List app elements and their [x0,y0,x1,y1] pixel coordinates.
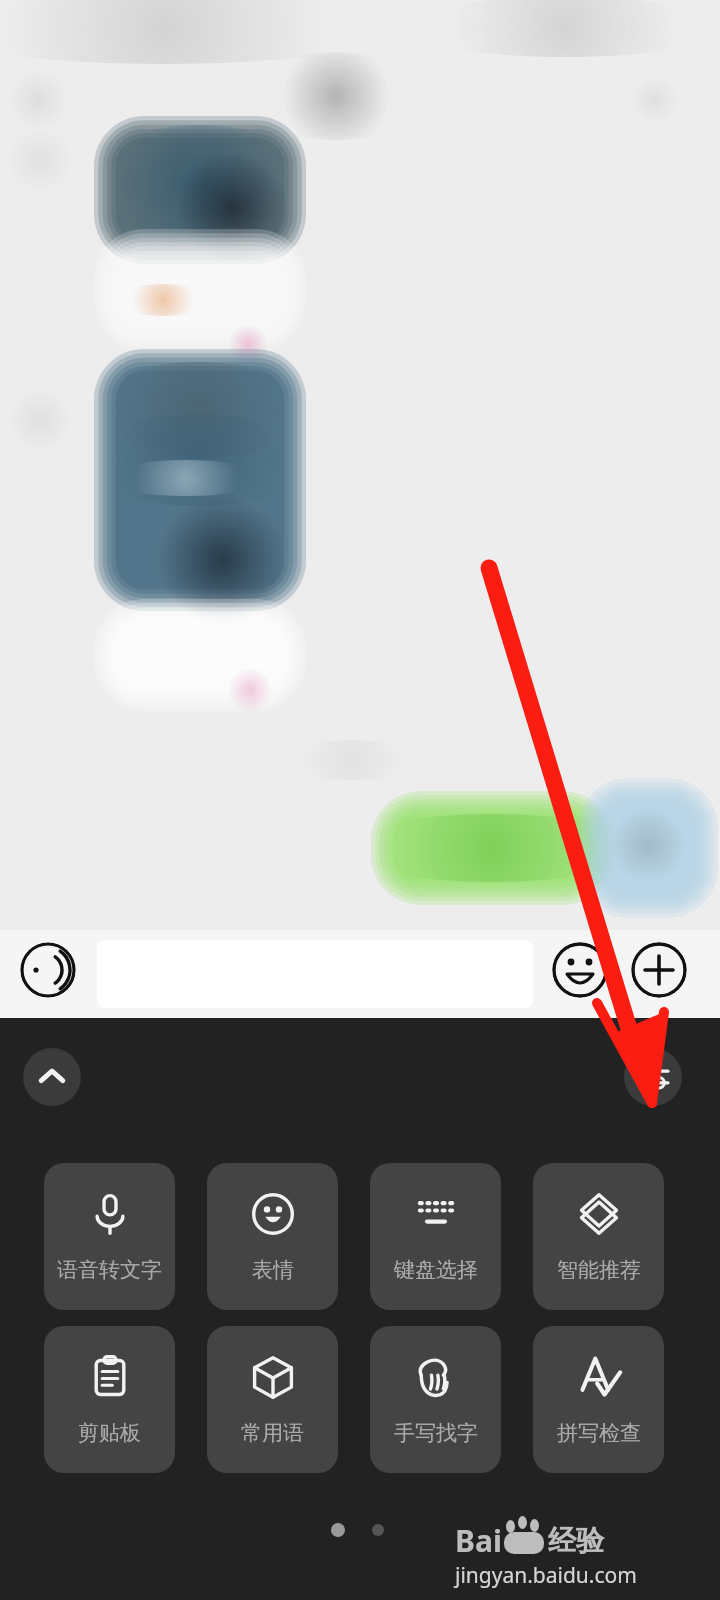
button[interactable]: 常用语 [207,1326,338,1473]
staticText: 剪贴板 [78,1420,141,1446]
staticText: 经验 [548,1523,604,1558]
button[interactable]: 键盘选择 [370,1163,501,1310]
button[interactable]: Keyboard settings [624,1048,682,1106]
staticText: 常用语 [241,1420,304,1446]
staticText: 语音转文字 [57,1257,162,1283]
staticText: 键盘选择 [394,1257,478,1283]
button[interactable]: 剪贴板 [44,1326,175,1473]
button[interactable]: 拼写检查 [533,1326,664,1473]
staticText: 拼写检查 [557,1420,641,1446]
button[interactable]: Collapse panel [23,1048,81,1106]
staticText: 手写找字 [394,1420,478,1446]
button[interactable]: Voice input [20,942,76,998]
staticText: jingyan.baidu.com [455,1561,637,1590]
button[interactable]: 手写找字 [370,1326,501,1473]
button[interactable]: More functions [631,942,687,998]
staticText: 智能推荐 [557,1257,641,1283]
button[interactable]: 语音转文字 [44,1163,175,1310]
staticText: 表情 [252,1257,294,1283]
staticText: Bai [455,1520,502,1561]
button[interactable]: Emoji [552,942,608,998]
button[interactable]: 智能推荐 [533,1163,664,1310]
button[interactable]: 表情 [207,1163,338,1310]
